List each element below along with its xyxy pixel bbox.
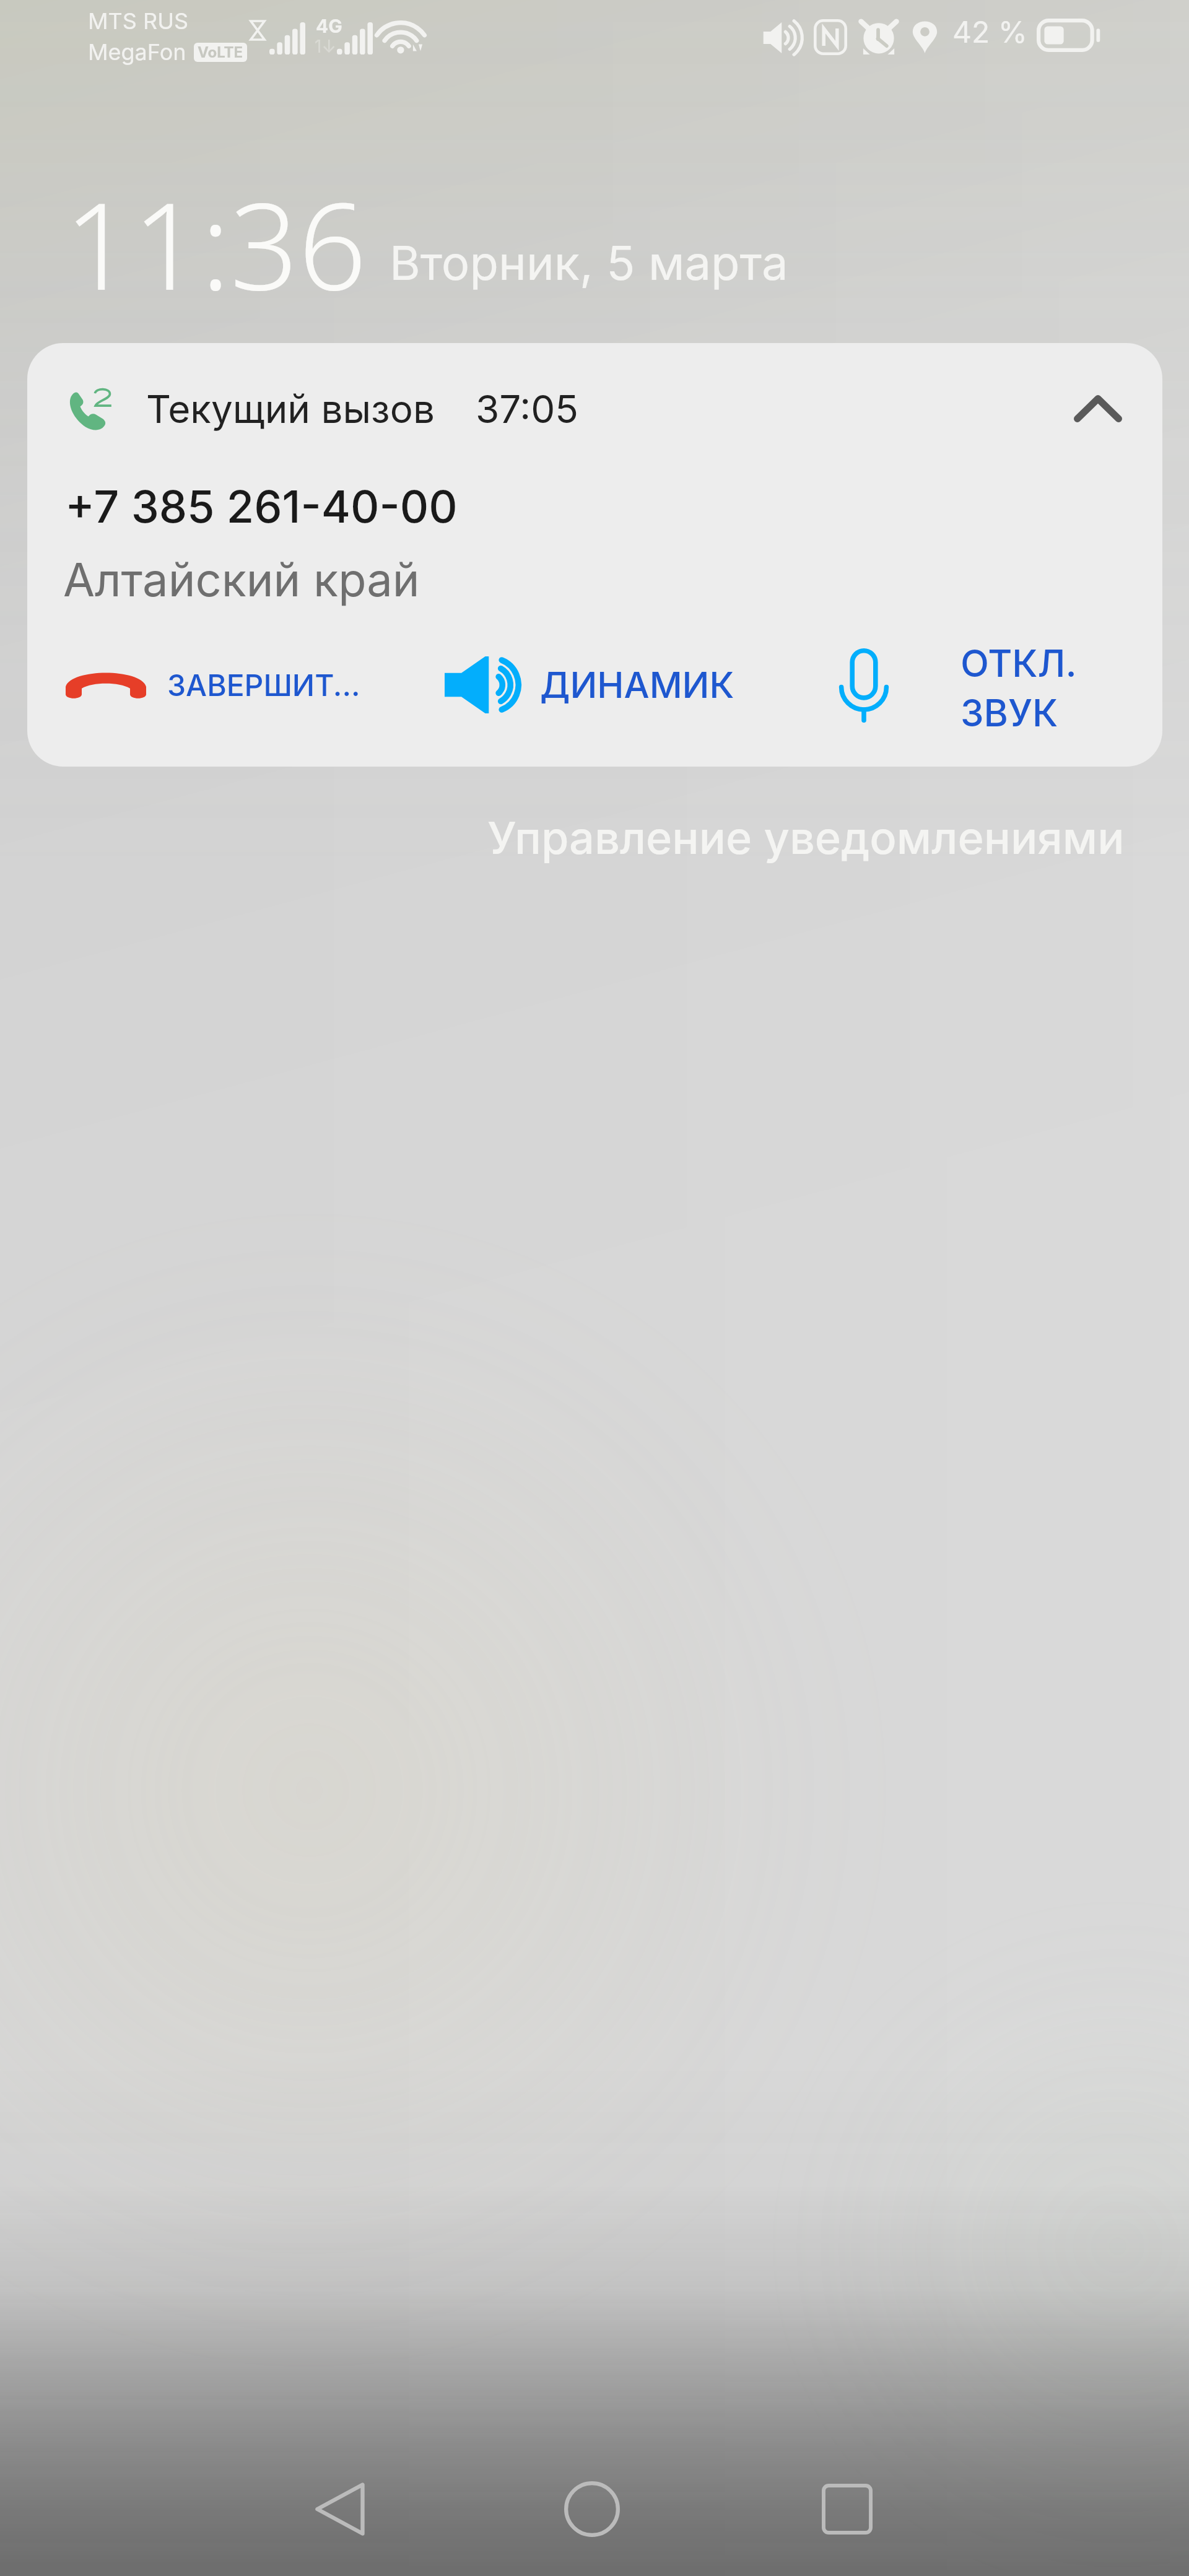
staticText: 1↓ <box>315 36 336 57</box>
button[interactable]: ОТКЛ. ЗВУК <box>839 626 1162 750</box>
staticText: Текущий вызов <box>146 386 435 432</box>
button[interactable]: Последние приложения <box>791 2453 903 2565</box>
button[interactable]: Назад <box>284 2453 395 2565</box>
button[interactable]: ДИНАМИК <box>441 623 757 747</box>
staticText: 42 % <box>952 14 1027 50</box>
staticText: 4G <box>316 15 342 37</box>
staticText: MTS RUS <box>88 7 189 35</box>
staticText: Вторник, 5 марта <box>390 234 788 291</box>
staticText: MegaFon <box>88 38 186 66</box>
button[interactable]: ЗАВЕРШИТ... <box>66 623 437 747</box>
staticText: ОТКЛ. ЗВУК <box>960 641 1077 736</box>
button[interactable]: Главный экран <box>536 2453 648 2565</box>
button[interactable]: Управление уведомлениями <box>481 804 1131 871</box>
staticText: Алтайский край <box>63 552 420 607</box>
staticText: VoLTE <box>198 43 243 61</box>
staticText: Управление уведомлениями <box>487 811 1125 864</box>
staticText: 11:36 <box>64 162 367 325</box>
staticText: 37:05 <box>476 386 578 432</box>
button[interactable]: Свернуть <box>1061 372 1135 446</box>
staticText: +7 385 261-40-00 <box>65 479 458 533</box>
staticText: ДИНАМИК <box>540 663 734 707</box>
staticText: ЗАВЕРШИТ... <box>167 667 360 703</box>
button[interactable]: Текущий вызов <box>27 343 1162 767</box>
